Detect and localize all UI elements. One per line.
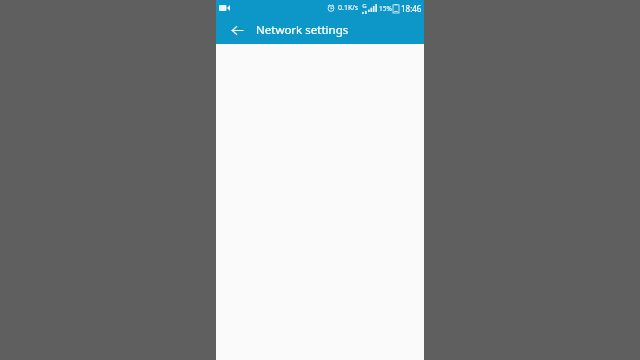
button[interactable]: Back: [226, 19, 248, 41]
staticText: G: [362, 2, 367, 10]
staticText: Network settings: [256, 22, 349, 38]
staticText: 18:46: [401, 3, 422, 14]
staticText: 0.1K/s: [338, 3, 359, 13]
staticText: 15%: [379, 4, 392, 13]
